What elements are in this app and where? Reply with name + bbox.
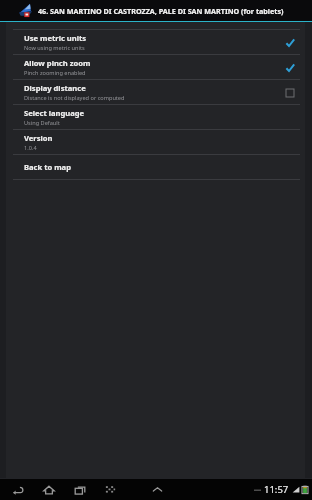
button[interactable]: Recent apps [71,481,88,498]
staticText: Pinch zooming enabled [24,69,86,77]
staticText: Use metric units [24,33,87,43]
button[interactable]: Enabled, toggle [284,37,295,48]
staticText: Display distance [24,83,86,93]
button[interactable]: Enabled, toggle [284,62,295,73]
button[interactable]: Show notifications [149,481,166,498]
button[interactable]: Back [9,481,26,498]
button[interactable]: Home [40,481,57,498]
button[interactable]: Allow pinch zoom [6,55,305,79]
staticText: Back to map [24,162,71,172]
staticText: Select language [24,108,85,118]
button[interactable]: Display distance [6,80,305,104]
button[interactable]: Select language [6,105,305,129]
button[interactable]: Use metric units [6,30,305,54]
button[interactable]: Back to map [6,155,305,179]
button[interactable]: Screenshot [102,481,119,498]
staticText: Distance is not displayed or computed [24,94,125,102]
staticText: Now using metric units [24,44,85,52]
button[interactable]: Disabled, toggle [284,87,295,98]
staticText: 46. SAN MARTINO DI CASTROZZA, PALE DI SA… [38,6,284,16]
staticText: 11:57 [264,483,289,496]
staticText: Allow pinch zoom [24,58,91,68]
staticText: 1.0.4 [24,144,37,152]
staticText: Version [24,133,53,143]
staticText: Using Default [24,119,60,127]
button[interactable]: Version [6,130,305,154]
